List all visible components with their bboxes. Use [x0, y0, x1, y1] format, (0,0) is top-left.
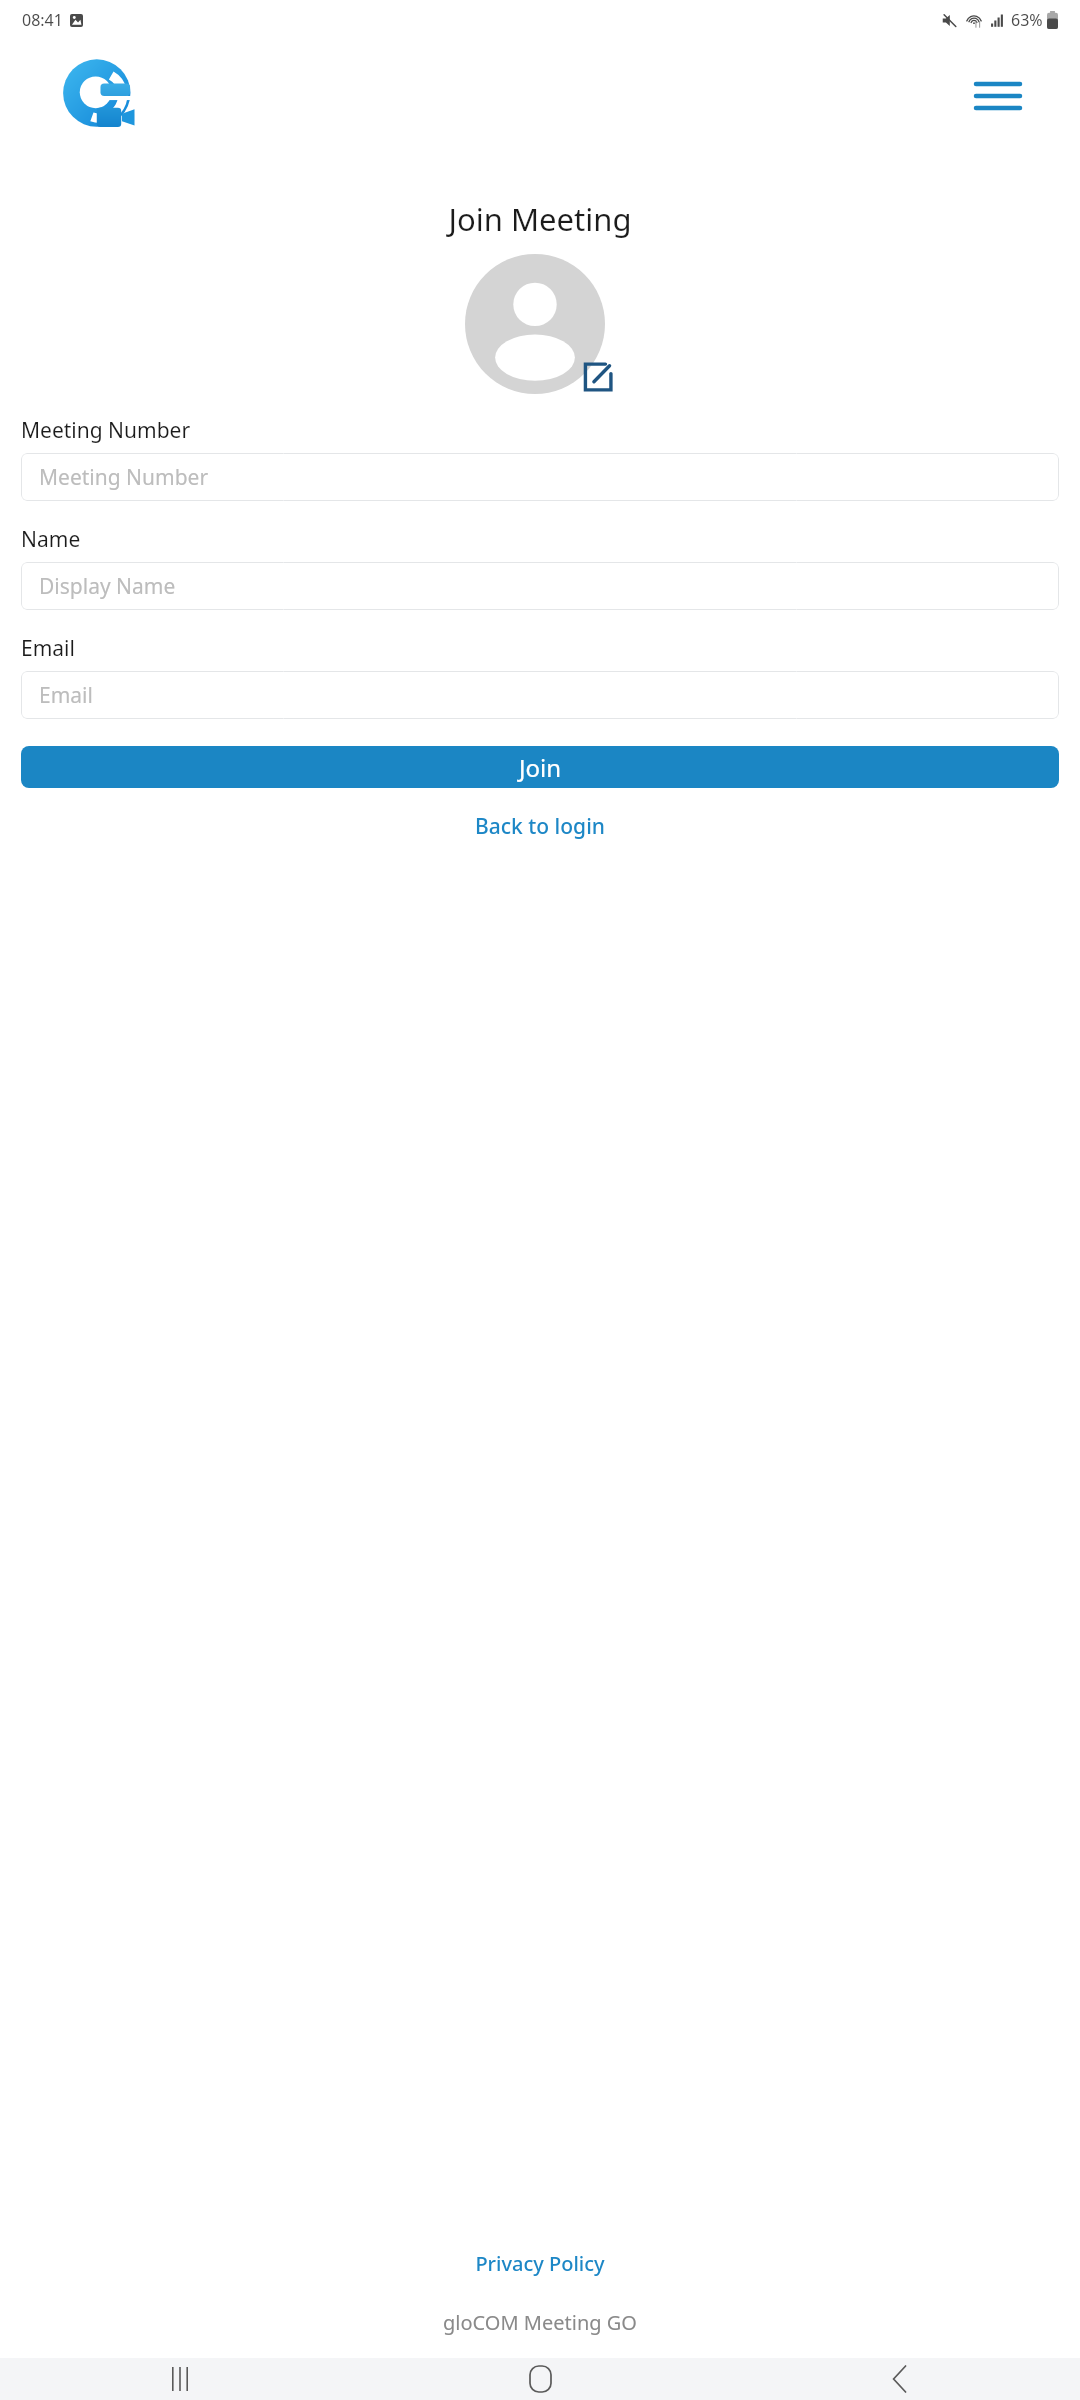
button[interactable]: Edit profile: [581, 360, 615, 394]
button[interactable]: Join: [21, 746, 1059, 788]
button[interactable]: Back to login: [0, 804, 1080, 849]
button[interactable]: Email: [21, 671, 1059, 719]
button[interactable]: gloCOM Meeting GO logo: [62, 59, 136, 133]
staticText: Join: [519, 751, 562, 784]
staticText: gloCOM Meeting GO: [0, 2309, 1080, 2336]
staticText: Email: [39, 681, 93, 710]
staticText: Meeting Number: [39, 463, 209, 492]
button[interactable]: Privacy Policy: [0, 2244, 1080, 2283]
staticText: 08:41: [22, 9, 63, 31]
button[interactable]: Recent apps: [0, 2358, 360, 2400]
button[interactable]: Meeting Number: [21, 453, 1059, 501]
button[interactable]: Menu: [966, 64, 1030, 128]
staticText: Name: [21, 525, 81, 554]
button[interactable]: Back: [720, 2358, 1080, 2400]
staticText: Display Name: [39, 572, 176, 601]
button[interactable]: Display Name: [21, 562, 1059, 610]
staticText: Meeting Number: [21, 416, 191, 445]
staticText: Email: [21, 634, 75, 663]
staticText: 63%: [1011, 9, 1043, 31]
button[interactable]: Home: [360, 2358, 720, 2400]
staticText: Join Meeting: [0, 198, 1080, 240]
